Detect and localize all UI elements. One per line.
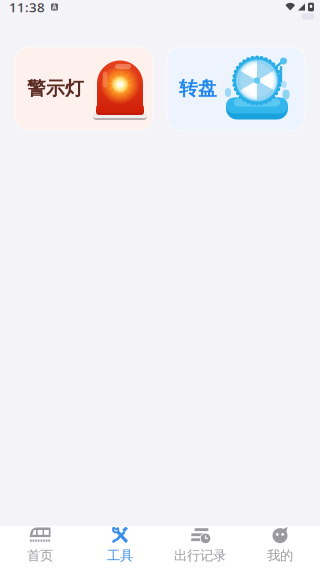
button[interactable]: 转盘	[167, 47, 305, 130]
staticText: 工具	[107, 547, 133, 564]
staticText: A	[52, 3, 57, 11]
staticText: 出行记录	[174, 547, 226, 564]
staticText: 我的	[267, 547, 293, 564]
button[interactable]: 出行记录	[160, 527, 240, 563]
button[interactable]: 工具	[80, 527, 160, 563]
button[interactable]: 我的	[240, 527, 320, 563]
button[interactable]: 警示灯	[15, 47, 153, 130]
staticText: 警示灯	[27, 77, 84, 100]
staticText: 11:38	[9, 0, 45, 16]
staticText: 首页	[27, 547, 53, 564]
staticText: 转盘	[179, 77, 217, 100]
button[interactable]: 首页	[0, 527, 80, 563]
